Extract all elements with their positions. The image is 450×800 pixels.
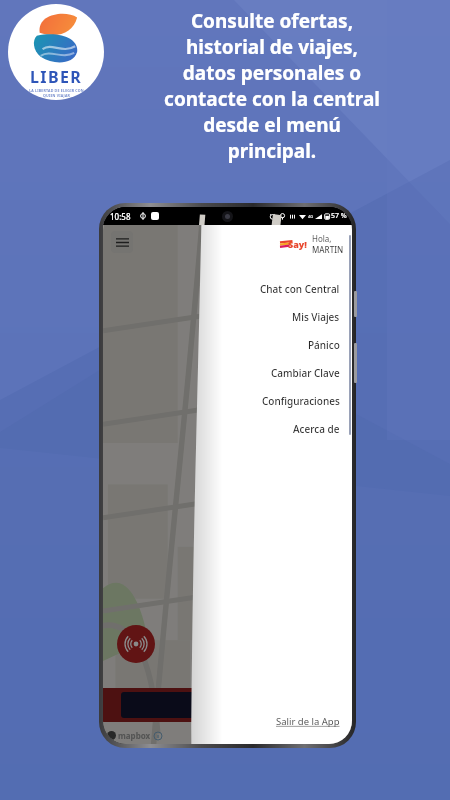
staticText: Mis Viajes (292, 310, 340, 324)
button[interactable]: Pánico (117, 625, 155, 663)
button[interactable]: Cambiar Clave (203, 359, 344, 387)
button[interactable]: Configuraciones (203, 387, 344, 415)
staticText: Say! (288, 238, 307, 250)
staticText: Pánico (308, 338, 340, 352)
staticText: 10:58 (110, 211, 131, 222)
button[interactable]: Mis Viajes (203, 303, 344, 331)
staticText: Configuraciones (262, 394, 340, 408)
staticText: 4G (308, 214, 314, 219)
staticText: LIBER (30, 66, 83, 88)
staticText: Salir de la App (276, 715, 340, 728)
button[interactable]: PONERME D (121, 692, 352, 718)
staticText: Hola, (312, 233, 332, 244)
button[interactable]: Menú (111, 231, 133, 253)
staticText: Cambiar Clave (271, 366, 340, 380)
staticText: Chat con Central (260, 282, 340, 296)
staticText: LA LIBERTAD DE ELEGIR CON QUIEN VIAJAR (29, 88, 84, 98)
button[interactable]: Acerca de (203, 415, 344, 443)
staticText: MARTIN (312, 244, 344, 255)
button[interactable]: Pánico (203, 331, 344, 359)
staticText: 57 % (331, 211, 347, 221)
staticText: Consulte ofertas, historial de viajes, d… (110, 8, 434, 164)
staticText: Acerca de (293, 422, 340, 436)
button[interactable]: Chat con Central (203, 275, 344, 303)
staticText: mapbox (118, 730, 151, 741)
button[interactable]: Salir de la App (276, 715, 344, 744)
